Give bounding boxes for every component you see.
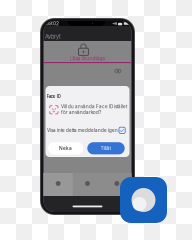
button[interactable]: Neka xyxy=(48,142,83,154)
staticText: Avbryt xyxy=(45,33,61,40)
button[interactable]: Identifiera xyxy=(43,173,73,196)
button[interactable]: Visa inte detta meddelande igen. xyxy=(47,127,125,133)
staticText: Vill du använda Face ID istället xyxy=(61,104,127,109)
staticText: för användarkod? xyxy=(61,110,101,115)
staticText: 09:02 xyxy=(46,21,59,26)
staticText: Tillåt xyxy=(100,145,111,151)
button[interactable]: Inställningar xyxy=(102,173,131,196)
staticText: Visa inte detta meddelande igen. xyxy=(47,128,119,133)
staticText: Neka xyxy=(59,145,72,151)
staticText: Face ID xyxy=(47,94,61,99)
staticText: Låsa Grundläge xyxy=(69,56,105,61)
staticText: ✓ xyxy=(119,126,125,134)
button[interactable]: BankID xyxy=(120,177,167,223)
button[interactable]: Avbryt xyxy=(45,33,71,40)
button[interactable]: Tillåt xyxy=(87,142,125,154)
button[interactable]: Skanna xyxy=(73,173,102,196)
